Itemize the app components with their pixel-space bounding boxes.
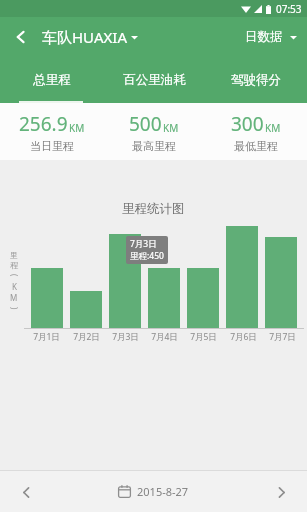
staticText: KM bbox=[163, 121, 179, 135]
staticText: 当日里程 bbox=[30, 139, 74, 153]
button[interactable]: 300 bbox=[205, 111, 307, 153]
staticText: K bbox=[12, 281, 17, 292]
staticText: 里程:450 bbox=[130, 250, 164, 262]
staticText: 最高里程 bbox=[132, 139, 176, 153]
staticText: 最低里程 bbox=[234, 139, 278, 153]
button[interactable]: 500 bbox=[103, 111, 205, 153]
staticText: 7月3日 bbox=[112, 331, 139, 343]
button[interactable]: 256.9 bbox=[0, 111, 103, 153]
staticText: 总里程 bbox=[33, 72, 71, 88]
staticText: 2015-8-27 bbox=[137, 484, 189, 499]
button[interactable]: 日数据 bbox=[245, 29, 297, 45]
staticText: 7月2日 bbox=[73, 331, 100, 343]
staticText: 日数据 bbox=[245, 29, 283, 45]
staticText: M bbox=[10, 292, 18, 303]
button[interactable] bbox=[109, 234, 141, 328]
staticText: ) bbox=[9, 307, 20, 310]
staticText: 百公里油耗 bbox=[123, 72, 186, 88]
staticText: ( bbox=[9, 274, 20, 277]
staticText: 7月7日 bbox=[269, 331, 296, 343]
staticText: 7月5日 bbox=[190, 331, 217, 343]
staticText: 里 bbox=[10, 250, 18, 260]
staticText: 7月1日 bbox=[33, 331, 60, 343]
button[interactable]: 2015-8-27 bbox=[118, 484, 189, 499]
staticText: 车队HUAXIA bbox=[42, 27, 127, 47]
button[interactable]: 驾驶得分 bbox=[205, 56, 307, 103]
button[interactable]: Next day bbox=[261, 472, 301, 512]
staticText: 256.9 bbox=[19, 111, 68, 137]
staticText: 7月3日 bbox=[130, 238, 157, 250]
button[interactable]: 总里程 bbox=[0, 56, 103, 103]
staticText: 7月4日 bbox=[151, 331, 178, 343]
staticText: 驾驶得分 bbox=[231, 72, 281, 88]
staticText: 7月6日 bbox=[230, 331, 257, 343]
button[interactable]: Previous day bbox=[6, 472, 46, 512]
staticText: KM bbox=[265, 121, 281, 135]
button[interactable]: 百公里油耗 bbox=[103, 56, 205, 103]
staticText: 里程统计图 bbox=[122, 201, 185, 217]
button[interactable]: 车队HUAXIA bbox=[42, 27, 138, 47]
staticText: 300 bbox=[231, 111, 264, 137]
staticText: KM bbox=[69, 121, 85, 135]
button[interactable]: Back bbox=[5, 21, 37, 53]
staticText: 程 bbox=[10, 260, 18, 270]
staticText: 07:53 bbox=[276, 2, 302, 16]
staticText: 500 bbox=[129, 111, 162, 137]
